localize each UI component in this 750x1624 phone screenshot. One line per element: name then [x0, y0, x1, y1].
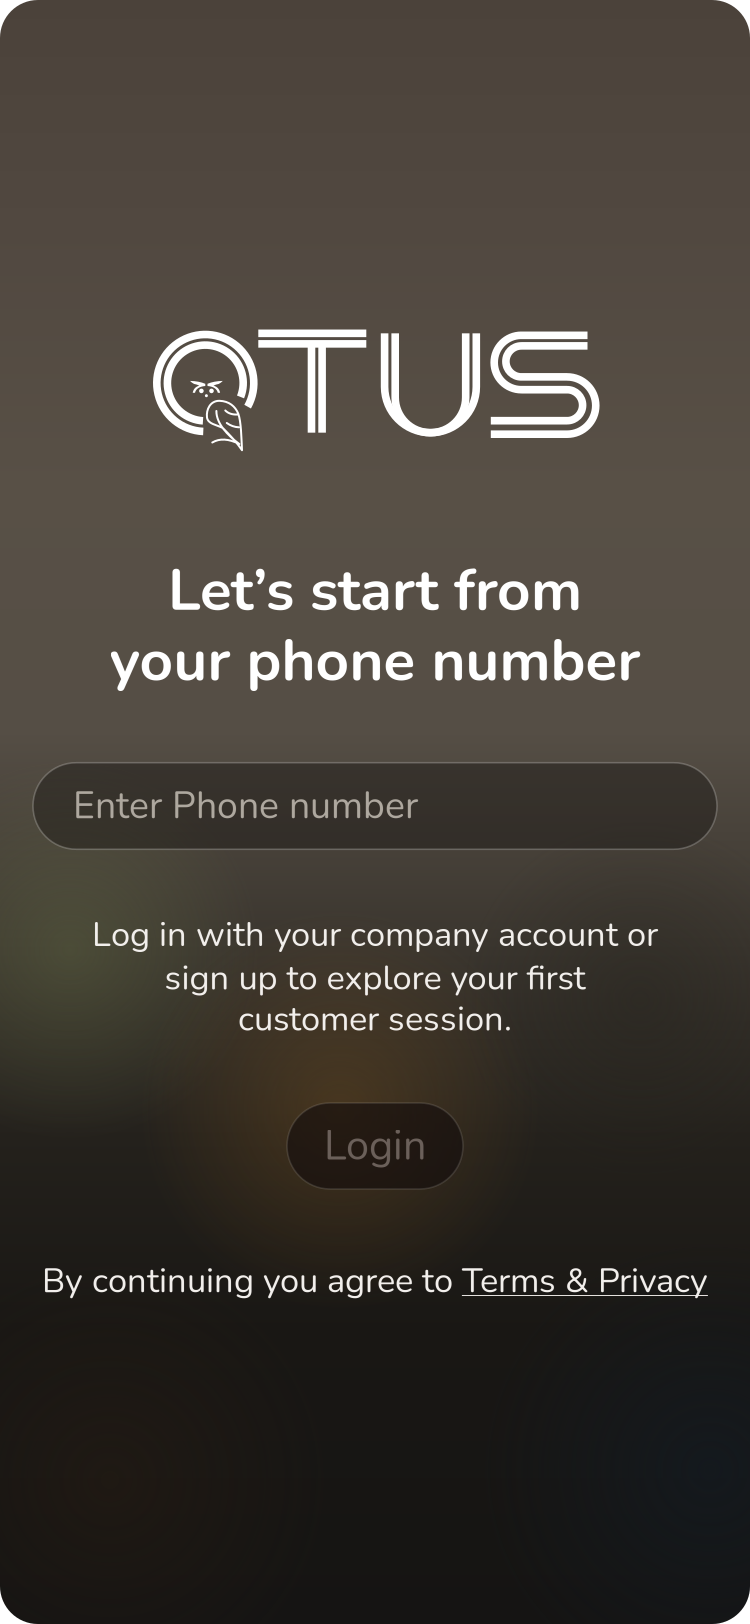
- staticText: Enter Phone number: [73, 780, 418, 831]
- staticText: Log in with your company account or: [92, 911, 658, 958]
- staticText: Login: [324, 1118, 426, 1174]
- staticText: customer session.: [238, 996, 512, 1042]
- button[interactable]: Enter Phone number: [33, 763, 717, 849]
- staticText: sign up to explore your first: [164, 955, 585, 1002]
- staticText: Terms & Privacy: [462, 1257, 708, 1304]
- button[interactable]: Terms & Privacy: [462, 1257, 708, 1304]
- staticText: By continuing you agree to: [42, 1257, 462, 1304]
- staticText: Let’s start from: [168, 551, 582, 630]
- button[interactable]: Login: [287, 1103, 463, 1189]
- staticText: your phone number: [109, 621, 640, 701]
